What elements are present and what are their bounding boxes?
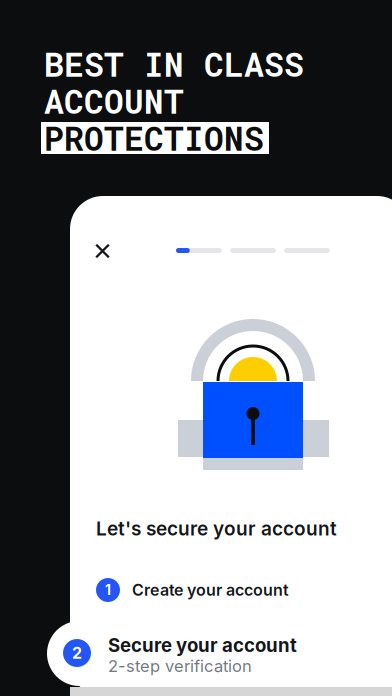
staticText: BEST IN CLASS (44, 42, 304, 86)
staticText: Create your account (132, 580, 289, 600)
staticText: PROTECTIONS (44, 116, 264, 160)
staticText: Let's secure your account (96, 517, 337, 540)
button[interactable]: Close (80, 229, 124, 273)
staticText: 1 (105, 581, 111, 598)
button[interactable]: 1 (96, 574, 392, 606)
staticText: 2 (72, 643, 82, 663)
button[interactable]: 2 (47, 621, 392, 686)
staticText: ACCOUNT (44, 79, 184, 123)
staticText: Secure your account (108, 634, 297, 656)
staticText: 2-step verification (108, 656, 252, 676)
